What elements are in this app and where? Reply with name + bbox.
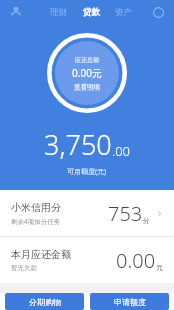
staticText: 查看明细 <box>74 83 100 91</box>
staticText: 753 <box>108 200 143 227</box>
button[interactable]: 理财 <box>45 5 72 20</box>
staticText: .00 <box>112 142 131 160</box>
staticText: 3,750 <box>44 126 112 163</box>
staticText: 资产 <box>115 7 132 18</box>
staticText: 0.00 <box>116 247 156 274</box>
staticText: 元 <box>156 263 163 272</box>
staticText: 分期购物 <box>29 297 61 307</box>
staticText: 0.00元 <box>72 66 102 80</box>
button[interactable]: Profile <box>6 2 26 22</box>
button[interactable]: 本月应还金额 <box>0 237 174 283</box>
button[interactable]: 分期购物 <box>5 293 84 310</box>
staticText: 分 <box>143 216 150 225</box>
staticText: 申请额度 <box>114 297 146 307</box>
button[interactable]: 资产 <box>110 5 137 20</box>
button[interactable]: 贷款 <box>78 5 105 20</box>
button[interactable]: 申请额度 <box>90 293 169 310</box>
button[interactable]: 应还总额 <box>72 56 102 91</box>
button[interactable]: Search <box>148 2 168 22</box>
staticText: 贷款 <box>83 7 100 18</box>
staticText: 应还总额 <box>75 56 99 64</box>
button[interactable]: 小米信用分 <box>0 190 174 236</box>
staticText: 剩余4项加分任务 <box>11 217 61 226</box>
staticText: 本月应还金额 <box>11 248 71 261</box>
staticText: 理财 <box>50 7 67 18</box>
staticText: 小米信用分 <box>11 201 61 214</box>
staticText: 可用额度(元) <box>67 167 107 177</box>
staticText: 暂无欠款 <box>11 264 37 272</box>
